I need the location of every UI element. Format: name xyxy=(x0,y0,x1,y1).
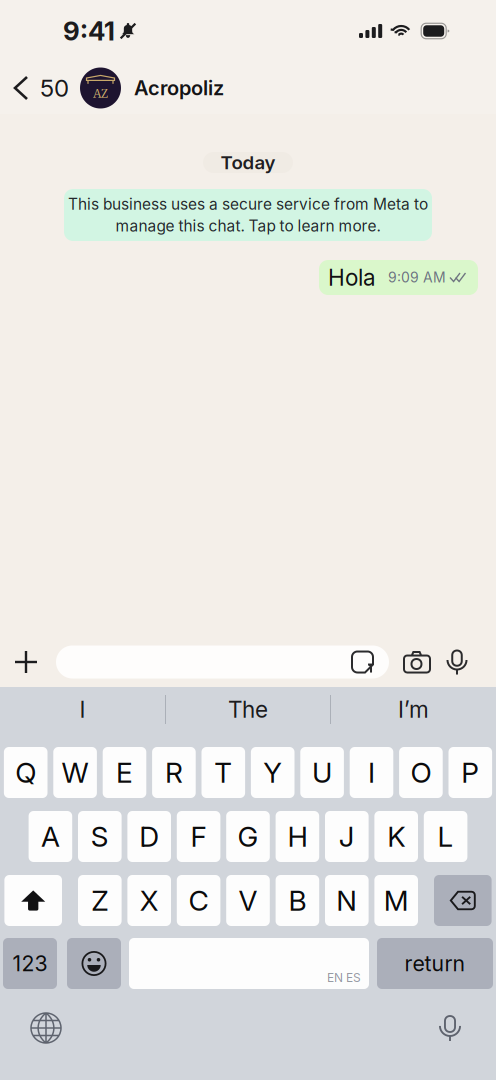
button[interactable]: Y xyxy=(251,747,294,798)
button[interactable]: D xyxy=(127,811,171,862)
button[interactable]: G xyxy=(226,811,270,862)
staticText: S xyxy=(91,820,109,853)
button[interactable]: Emoji xyxy=(67,938,121,989)
button[interactable]: 50 xyxy=(0,62,80,114)
staticText: W xyxy=(62,756,89,789)
button[interactable]: P xyxy=(448,747,492,798)
staticText: 123 xyxy=(12,951,47,976)
staticText: V xyxy=(238,884,257,917)
button[interactable]: M xyxy=(374,875,418,926)
button[interactable]: Voice message xyxy=(446,645,468,679)
button[interactable]: H xyxy=(276,811,319,862)
staticText: X xyxy=(140,884,159,917)
button[interactable]: R xyxy=(152,747,196,798)
staticText: T xyxy=(214,756,232,789)
staticText: I xyxy=(368,756,375,789)
staticText: I xyxy=(79,696,85,723)
button[interactable]: Q xyxy=(4,747,47,798)
staticText: O xyxy=(410,756,431,789)
button[interactable]: U xyxy=(300,747,344,798)
staticText: A xyxy=(41,820,60,853)
button[interactable]: T xyxy=(201,747,245,798)
staticText: manage this chat. Tap to learn more. xyxy=(115,216,380,235)
button[interactable]: I’m xyxy=(331,687,496,732)
button[interactable]: V xyxy=(226,875,270,926)
staticText: E xyxy=(116,756,133,789)
button[interactable]: J xyxy=(325,811,369,862)
staticText: Q xyxy=(15,756,36,789)
button[interactable]: The xyxy=(166,687,330,732)
staticText: Today xyxy=(220,151,275,174)
button[interactable]: X xyxy=(127,875,171,926)
staticText: B xyxy=(288,884,306,917)
button[interactable]: Shift xyxy=(4,875,62,926)
button[interactable]: return xyxy=(377,938,493,989)
staticText: Hola xyxy=(328,264,376,291)
staticText: EN ES xyxy=(327,970,361,985)
staticText: 9:41 xyxy=(63,15,115,47)
button[interactable]: W xyxy=(53,747,97,798)
button[interactable]: L xyxy=(424,811,467,862)
button[interactable]: I xyxy=(350,747,393,798)
button[interactable]: Camera xyxy=(403,645,431,679)
staticText: R xyxy=(165,756,183,789)
staticText: This business uses a secure service from… xyxy=(68,195,428,213)
staticText: H xyxy=(287,820,307,853)
staticText: I’m xyxy=(398,696,429,723)
button[interactable]: Z xyxy=(78,875,122,926)
button[interactable]: E xyxy=(103,747,146,798)
button[interactable]: S xyxy=(78,811,122,862)
button[interactable]: AZ xyxy=(80,62,224,114)
button[interactable]: N xyxy=(325,875,369,926)
staticText: K xyxy=(387,820,405,853)
staticText: F xyxy=(191,820,207,853)
button[interactable]: K xyxy=(374,811,418,862)
button[interactable]: I xyxy=(0,687,165,732)
button[interactable]: Change keyboard xyxy=(24,1008,68,1048)
button[interactable]: 123 xyxy=(3,938,57,989)
button[interactable]: O xyxy=(399,747,443,798)
button[interactable]: EN ES xyxy=(129,938,369,989)
staticText: Y xyxy=(263,756,282,789)
button[interactable]: F xyxy=(177,811,220,862)
button[interactable]: Delete xyxy=(434,875,492,926)
staticText: The xyxy=(228,696,268,723)
button[interactable]: C xyxy=(177,875,220,926)
staticText: 9:09 AM xyxy=(388,269,446,286)
staticText: L xyxy=(438,820,454,853)
staticText: J xyxy=(339,820,355,853)
staticText: Z xyxy=(91,884,108,917)
button[interactable]: B xyxy=(276,875,319,926)
staticText: N xyxy=(336,884,357,917)
staticText: M xyxy=(384,884,409,917)
staticText: C xyxy=(189,884,209,917)
staticText: D xyxy=(139,820,159,853)
staticText: Acropoliz xyxy=(134,76,224,100)
button[interactable]: Attach xyxy=(6,640,46,684)
staticText: G xyxy=(237,820,258,853)
staticText: U xyxy=(312,756,332,789)
staticText: P xyxy=(461,756,479,789)
staticText: AZ xyxy=(93,85,108,101)
button[interactable]: A xyxy=(29,811,72,862)
staticText: 50 xyxy=(40,73,69,102)
button[interactable]: Dictate xyxy=(428,1008,472,1048)
button[interactable] xyxy=(56,645,389,678)
staticText: return xyxy=(404,951,465,976)
